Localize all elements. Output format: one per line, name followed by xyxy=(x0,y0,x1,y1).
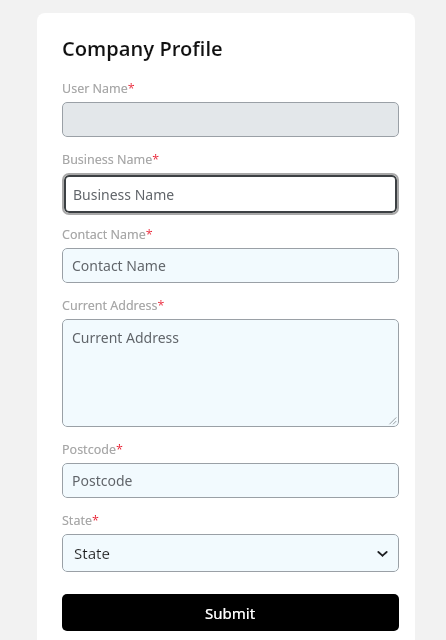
button[interactable]: Business Name xyxy=(62,173,399,215)
other: Open state dropdown xyxy=(377,548,388,559)
staticText: State xyxy=(74,543,110,563)
staticText: User Name* xyxy=(62,80,135,97)
button[interactable]: State xyxy=(62,534,399,572)
staticText: Postcode* xyxy=(62,441,123,458)
staticText: Business Name* xyxy=(62,151,160,168)
button[interactable]: Postcode xyxy=(62,463,399,498)
staticText: Business Name xyxy=(73,185,175,204)
staticText: Submit xyxy=(205,603,256,623)
button[interactable]: Current Address xyxy=(62,319,399,427)
staticText: Contact Name xyxy=(72,256,166,275)
staticText: Current Address* xyxy=(62,297,165,314)
button[interactable]: Submit xyxy=(62,594,399,631)
staticText: Contact Name* xyxy=(62,226,153,243)
staticText: Postcode xyxy=(72,471,133,490)
staticText: Company Profile xyxy=(62,35,223,62)
button[interactable] xyxy=(62,102,399,137)
button[interactable]: Contact Name xyxy=(62,248,399,283)
staticText: State* xyxy=(62,512,99,529)
staticText: Current Address xyxy=(72,328,180,347)
